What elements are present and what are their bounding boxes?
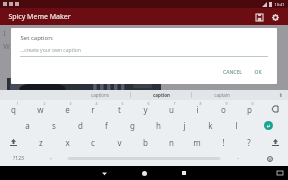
staticText: 5 bbox=[121, 101, 124, 106]
staticText: n bbox=[169, 137, 174, 148]
button[interactable]: Back bbox=[84, 166, 124, 180]
button[interactable]: More suggestions bbox=[272, 90, 288, 100]
button[interactable]: k bbox=[197, 117, 223, 134]
staticText: f bbox=[105, 120, 108, 131]
staticText: caption bbox=[153, 92, 170, 98]
staticText: 1 bbox=[16, 101, 19, 106]
button[interactable]: Shift bbox=[0, 134, 27, 151]
staticText: w bbox=[37, 104, 44, 115]
button[interactable]: Home bbox=[124, 166, 164, 180]
staticText: 6 bbox=[147, 101, 150, 106]
staticText: u bbox=[169, 104, 174, 115]
button[interactable]: Save bbox=[251, 9, 267, 25]
staticText: s bbox=[52, 120, 56, 131]
button[interactable]: 5 bbox=[106, 100, 132, 117]
staticText: m bbox=[193, 137, 201, 148]
staticText: Set caption: bbox=[20, 34, 54, 42]
button[interactable]: a bbox=[14, 117, 41, 134]
button[interactable]: 9 bbox=[210, 100, 236, 117]
button[interactable]: l bbox=[223, 117, 249, 134]
staticText: 8 bbox=[199, 101, 202, 106]
button[interactable]: 7 bbox=[158, 100, 184, 117]
button[interactable]: Settings bbox=[267, 9, 283, 25]
staticText: ↵ bbox=[266, 123, 271, 129]
button[interactable]: 2 bbox=[27, 100, 54, 117]
button[interactable]: j bbox=[171, 117, 197, 134]
staticText: a bbox=[25, 120, 30, 131]
staticText: e bbox=[65, 104, 70, 115]
button[interactable]: n bbox=[158, 134, 184, 151]
button[interactable]: h bbox=[145, 117, 171, 134]
button[interactable]: ! bbox=[210, 134, 236, 151]
staticText: , bbox=[50, 153, 52, 161]
staticText: b bbox=[143, 137, 148, 148]
staticText: z bbox=[39, 137, 43, 148]
button[interactable]: 8 bbox=[184, 100, 210, 117]
staticText: OK bbox=[254, 69, 262, 76]
staticText: k bbox=[208, 120, 213, 131]
button[interactable]: m bbox=[184, 134, 210, 151]
button[interactable]: ? bbox=[236, 134, 262, 151]
staticText: ? bbox=[247, 137, 251, 148]
staticText: p bbox=[247, 104, 252, 115]
staticText: CANCEL bbox=[223, 69, 242, 76]
staticText: captions bbox=[91, 92, 109, 98]
button[interactable]: v bbox=[106, 134, 132, 151]
staticText: r bbox=[91, 104, 95, 115]
staticText: t bbox=[118, 104, 121, 115]
button[interactable]: f bbox=[93, 117, 119, 134]
button[interactable]: z bbox=[27, 134, 54, 151]
staticText: 10:41 bbox=[274, 2, 285, 7]
button[interactable]: c bbox=[80, 134, 106, 151]
staticText: . bbox=[237, 153, 239, 161]
button[interactable]: 0 bbox=[236, 100, 262, 117]
staticText: v bbox=[117, 137, 122, 148]
button[interactable]: caption bbox=[131, 90, 191, 100]
button[interactable]: Space bbox=[64, 151, 224, 166]
staticText: q bbox=[11, 104, 16, 115]
button[interactable]: captions bbox=[70, 90, 130, 100]
button[interactable]: ?123 bbox=[0, 151, 37, 166]
staticText: d bbox=[78, 120, 83, 131]
staticText: ...create your own caption bbox=[20, 47, 81, 54]
button[interactable]: d bbox=[67, 117, 93, 134]
button[interactable]: CANCEL bbox=[219, 67, 246, 78]
button[interactable]: captain bbox=[192, 90, 252, 100]
staticText: 4 bbox=[95, 101, 98, 106]
button[interactable]: Shift bbox=[262, 134, 288, 151]
button[interactable]: b bbox=[132, 134, 158, 151]
staticText: 0 bbox=[251, 101, 254, 106]
staticText: h bbox=[156, 120, 161, 131]
staticText: 9 bbox=[225, 101, 228, 106]
button[interactable]: Backspace bbox=[262, 100, 288, 117]
staticText: ?123 bbox=[13, 155, 24, 162]
staticText: 7 bbox=[173, 101, 176, 106]
button[interactable]: 4 bbox=[80, 100, 106, 117]
staticText: x bbox=[65, 137, 70, 148]
staticText: captain bbox=[214, 92, 230, 98]
staticText: l bbox=[235, 120, 238, 131]
staticText: 3 bbox=[69, 101, 72, 106]
button[interactable]: Hide keyboard bbox=[272, 166, 288, 180]
button[interactable]: x bbox=[54, 134, 80, 151]
staticText: c bbox=[91, 137, 95, 148]
button[interactable]: g bbox=[119, 117, 145, 134]
button[interactable]: 3 bbox=[54, 100, 80, 117]
button[interactable]: s bbox=[41, 117, 67, 134]
button[interactable]: Emoji bbox=[251, 151, 288, 166]
button[interactable]: 6 bbox=[132, 100, 158, 117]
button[interactable]: 1 bbox=[0, 100, 27, 117]
staticText: Spicy Meme Maker bbox=[8, 12, 71, 22]
staticText: o bbox=[221, 104, 226, 115]
staticText: i bbox=[196, 104, 199, 115]
staticText: ! bbox=[222, 137, 225, 148]
staticText: W bbox=[3, 42, 10, 52]
staticText: ⬍ bbox=[278, 92, 283, 98]
staticText: 2 bbox=[43, 101, 46, 106]
button[interactable]: Enter bbox=[249, 117, 288, 134]
button[interactable]: OK bbox=[250, 67, 266, 78]
staticText: I bbox=[3, 29, 6, 39]
button[interactable]: Recents bbox=[164, 166, 204, 180]
